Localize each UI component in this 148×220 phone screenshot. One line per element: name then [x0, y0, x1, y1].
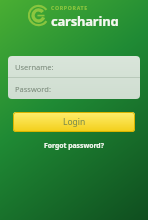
staticText: CORPORATE: [51, 4, 88, 11]
staticText: Username:: [15, 62, 54, 72]
other: Corporate Carsharing logo: [28, 3, 120, 26]
staticText: carsharing: [51, 12, 119, 26]
button[interactable]: Username:: [8, 56, 140, 77]
button[interactable]: Forgot password?: [38, 139, 110, 152]
staticText: Login: [63, 116, 86, 128]
button[interactable]: Login: [13, 112, 135, 132]
staticText: Password:: [15, 84, 51, 94]
button[interactable]: Password:: [8, 78, 140, 99]
staticText: Forgot password?: [44, 141, 104, 150]
